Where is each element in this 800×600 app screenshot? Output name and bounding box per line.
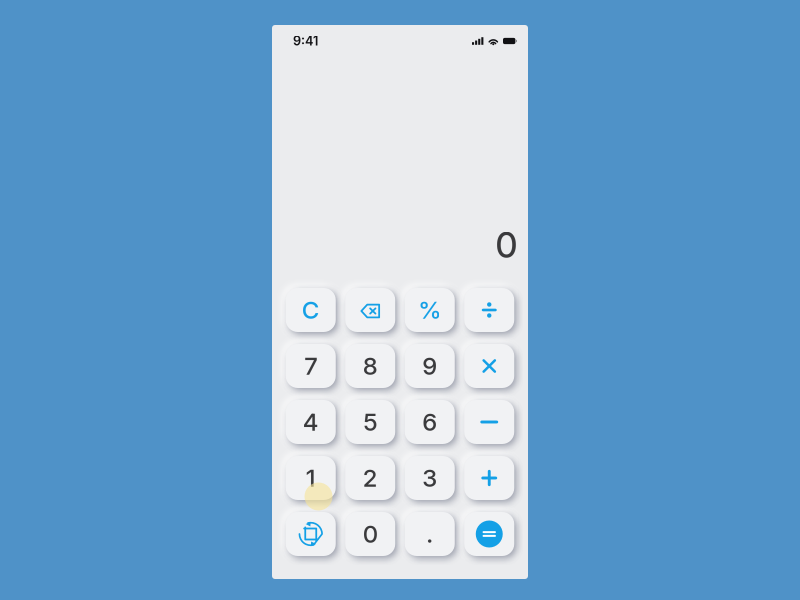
button[interactable]: Delete — [345, 288, 395, 332]
button[interactable]: 3 — [405, 456, 455, 500]
staticText: 9:41 — [293, 33, 318, 49]
button[interactable]: 5 — [345, 400, 395, 444]
button[interactable]: Multiply — [464, 344, 514, 388]
button[interactable]: Crop and rotate — [286, 512, 336, 556]
staticText: % — [418, 295, 441, 324]
button[interactable]: . — [405, 512, 455, 556]
button[interactable]: 1 — [286, 456, 336, 500]
button[interactable]: 8 — [345, 344, 395, 388]
staticText: 6 — [422, 407, 437, 436]
staticText: . — [426, 519, 433, 548]
staticText: 1 — [306, 463, 316, 492]
button[interactable]: 0 — [345, 512, 395, 556]
button[interactable]: 4 — [286, 400, 336, 444]
button[interactable]: C — [286, 288, 336, 332]
button[interactable]: 2 — [345, 456, 395, 500]
staticText: 9 — [422, 351, 437, 380]
staticText: C — [302, 295, 320, 324]
staticText: 8 — [363, 351, 378, 380]
staticText: 4 — [303, 407, 319, 436]
button[interactable]: Divide — [464, 288, 514, 332]
staticText: 5 — [363, 407, 377, 436]
button[interactable]: 9 — [405, 344, 455, 388]
button[interactable]: Subtract — [464, 400, 514, 444]
button[interactable]: 7 — [286, 344, 336, 388]
button[interactable]: 6 — [405, 400, 455, 444]
button[interactable]: Add — [464, 456, 514, 500]
staticText: 7 — [304, 351, 317, 380]
staticText: 2 — [363, 463, 378, 492]
staticText: 3 — [422, 463, 437, 492]
button[interactable]: Equals — [464, 512, 514, 556]
staticText: 0 — [495, 224, 517, 266]
button[interactable]: % — [405, 288, 455, 332]
staticText: 0 — [363, 519, 378, 548]
